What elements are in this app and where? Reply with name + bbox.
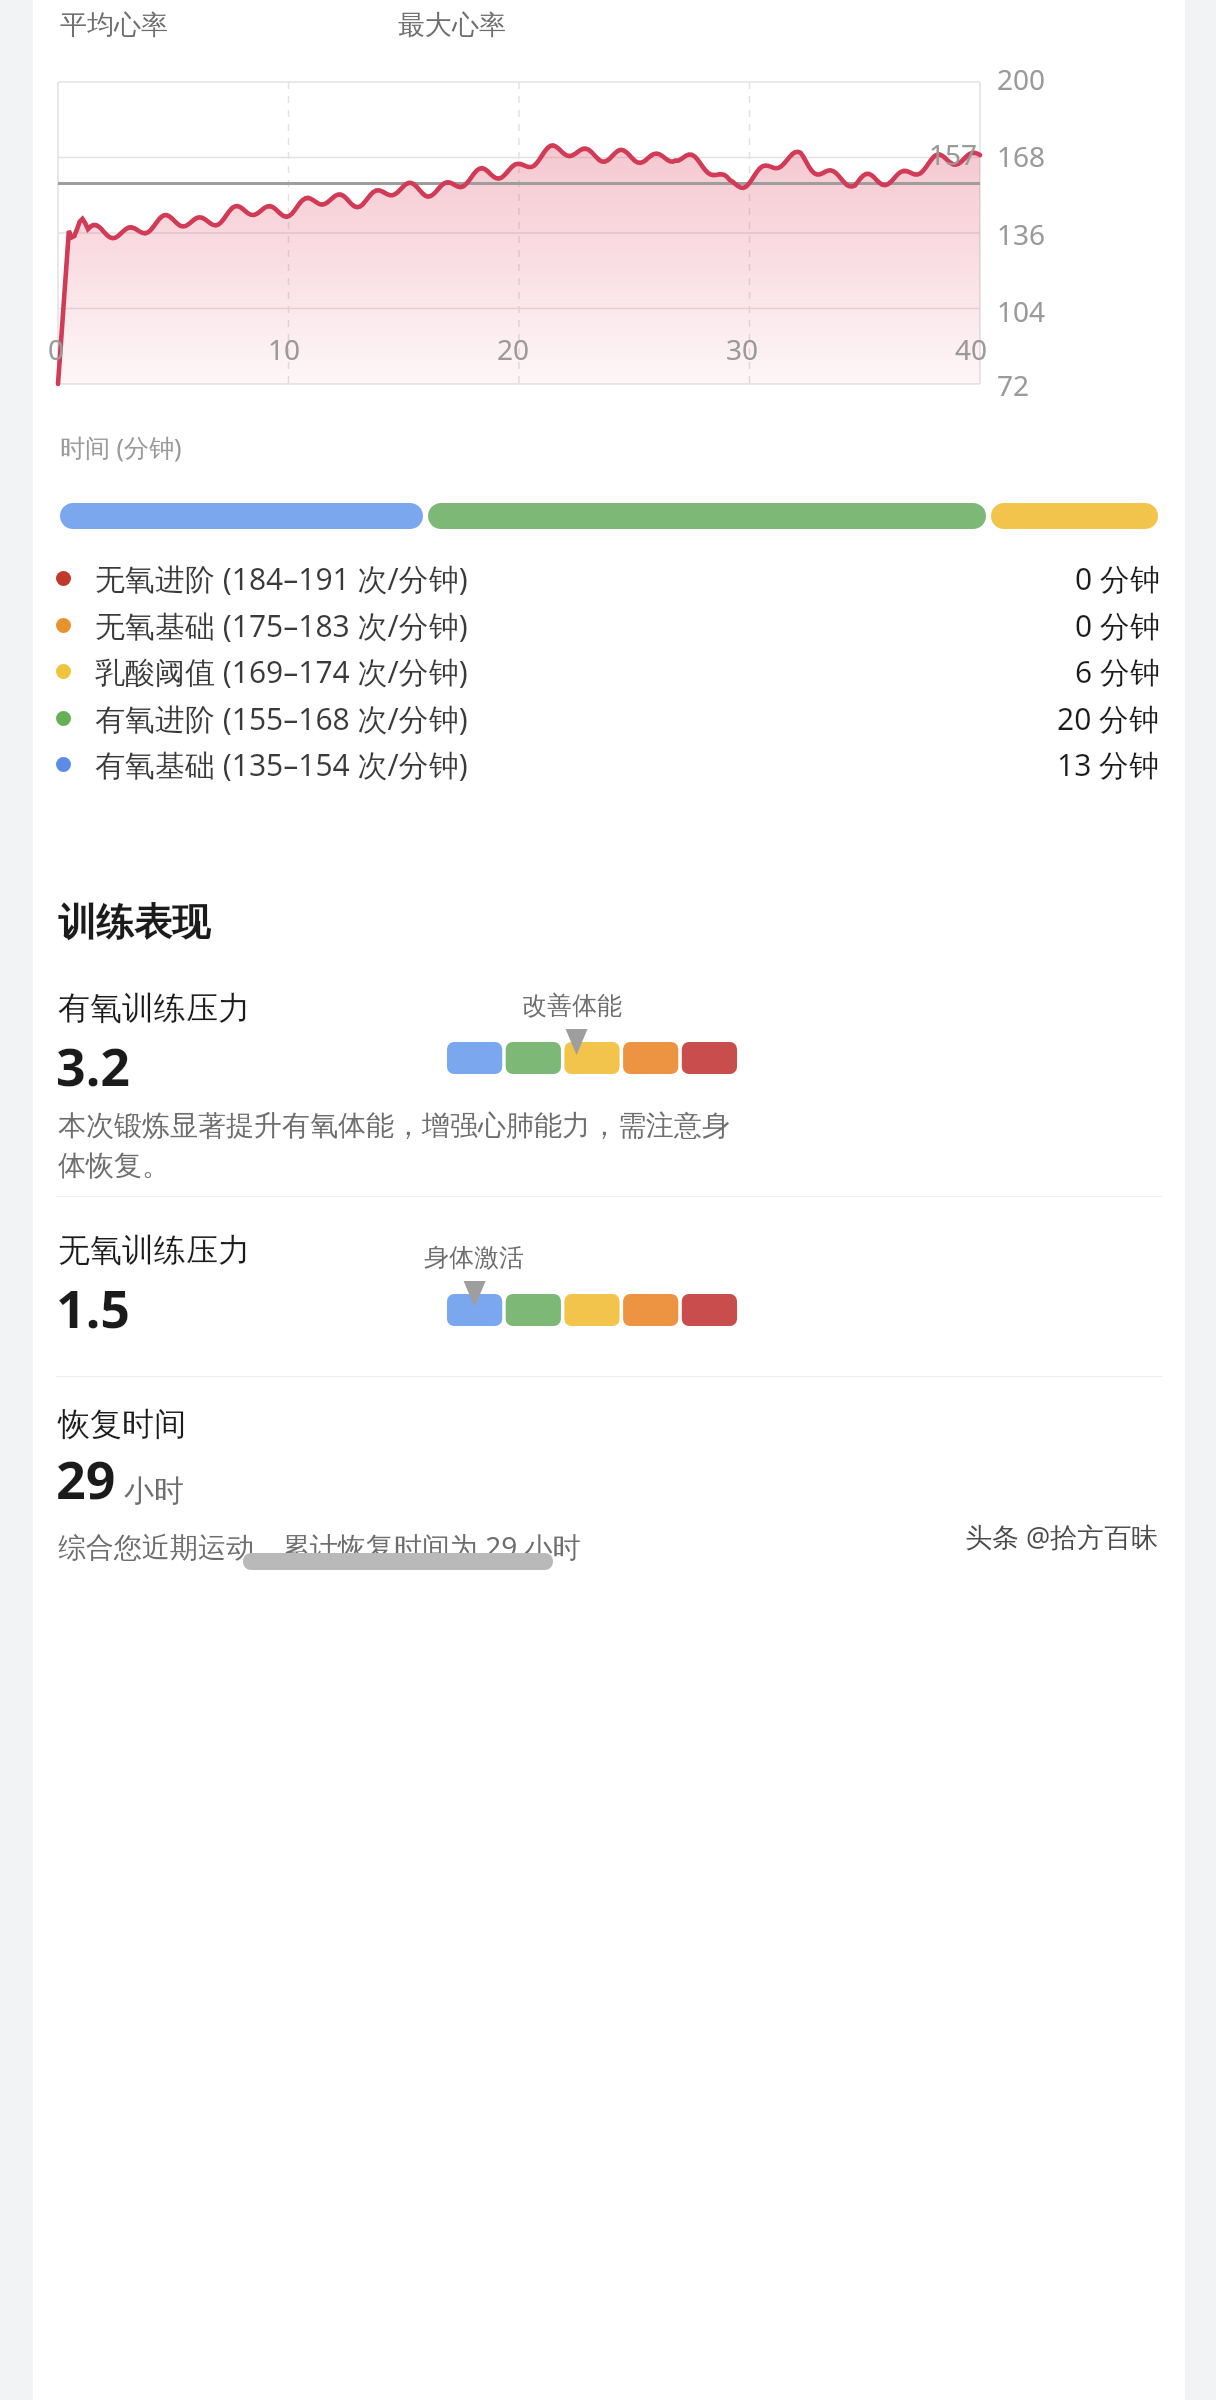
staticText: 时间 (分钟) [60,430,182,464]
staticText: 无氧基础 (175–183 次/分钟) [95,605,468,646]
staticText: 乳酸阈值 (169–174 次/分钟) [95,651,468,692]
button[interactable]: 乳酸阈值 (169–174 次/分钟) [56,648,1160,694]
staticText: 29 [56,1443,116,1514]
staticText: 20 [497,330,530,368]
staticText: 1.5 [56,1272,131,1343]
other: 身体激活 [447,1242,737,1327]
staticText: 0 分钟 [1075,605,1160,646]
staticText: 本次锻炼显著提升有氧体能，增强心肺能力，需注意身体恢复。 [58,1108,730,1183]
staticText: 训练表现 [58,898,210,946]
staticText: 104 [997,292,1046,330]
button[interactable]: 无氧基础 (175–183 次/分钟) [56,602,1160,648]
staticText: 有氧进阶 (155–168 次/分钟) [95,698,468,739]
staticText: 身体激活 [416,1242,532,1273]
staticText: 20 分钟 [1057,698,1160,739]
staticText: 3.2 [56,1030,131,1101]
staticText: 200 [997,60,1046,98]
staticText: 157 [929,135,978,173]
staticText: 综合您近期运动，累计恢复时间为 29 小时 [58,1527,581,1565]
staticText: 136 [997,215,1046,253]
staticText: 0 分钟 [1075,558,1160,599]
staticText: 30 [726,330,759,368]
staticText: 0 [48,330,65,368]
staticText: 10 [268,330,301,368]
button[interactable]: 有氧进阶 (155–168 次/分钟) [56,695,1160,741]
staticText: 最大心率 [398,8,506,42]
button[interactable]: 无氧进阶 (184–191 次/分钟) [56,555,1160,601]
staticText: 小时 [124,1472,184,1510]
staticText: 恢复时间 [58,1404,186,1444]
staticText: 头条 @拾方百昧 [965,1518,1159,1555]
staticText: 平均心率 [60,8,168,42]
staticText: 40 [955,330,988,368]
staticText: 无氧训练压力 [58,1230,250,1270]
staticText: 72 [997,366,1030,404]
staticText: 无氧进阶 (184–191 次/分钟) [95,558,468,599]
button[interactable]: 有氧基础 (135–154 次/分钟) [56,741,1160,787]
staticText: 168 [997,137,1046,175]
other: 改善体能 [447,990,737,1075]
staticText: 有氧训练压力 [58,988,250,1028]
staticText: 改善体能 [514,990,630,1021]
staticText: 13 分钟 [1057,744,1160,785]
staticText: 6 分钟 [1075,651,1160,692]
staticText: 有氧基础 (135–154 次/分钟) [95,744,468,785]
